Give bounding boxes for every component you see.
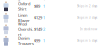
staticText: 1 xyxy=(43,4,45,9)
staticText: In stock now xyxy=(80,27,97,31)
staticText: 1 xyxy=(43,38,45,43)
staticText: Ships in 5 days xyxy=(77,39,97,42)
staticText: 2 xyxy=(43,27,45,32)
staticText: Ships in 3 days xyxy=(77,16,97,19)
staticText: Ships in 2 days xyxy=(77,4,97,8)
staticText: Wool Overshirt xyxy=(18,21,33,37)
staticText: $129 xyxy=(34,15,42,20)
staticText: 1 xyxy=(43,15,45,20)
staticText: $99 xyxy=(34,38,40,43)
staticText: Oxford Shirt xyxy=(18,1,30,11)
staticText: $89 xyxy=(34,4,40,9)
staticText: QUANTITY xyxy=(43,0,56,1)
staticText: Linen Blazer xyxy=(18,12,30,23)
staticText: Denim Trousers xyxy=(18,35,34,46)
staticText: DESCRIPTION xyxy=(18,0,34,3)
staticText: $149 xyxy=(34,27,42,32)
